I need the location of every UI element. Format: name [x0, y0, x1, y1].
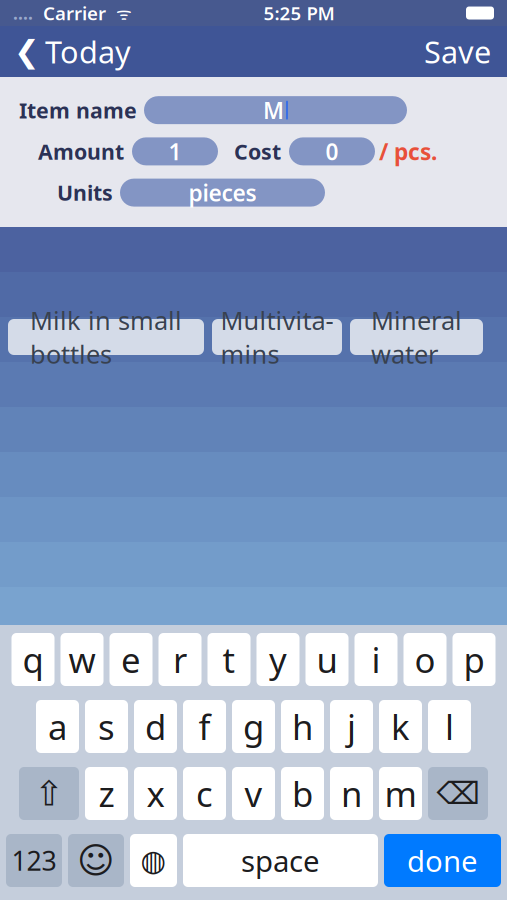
staticText: space — [241, 841, 320, 880]
button[interactable]: Milk in small bottles — [8, 319, 204, 355]
button[interactable]: Mineral water — [350, 319, 483, 355]
button[interactable]: b — [281, 767, 324, 820]
button[interactable]: z — [85, 767, 128, 820]
button[interactable]: y — [256, 633, 299, 686]
staticText: e — [121, 636, 141, 682]
button[interactable]: t — [207, 633, 250, 686]
button[interactable]: ❮ — [0, 22, 131, 81]
button[interactable]: done — [384, 834, 501, 887]
button[interactable]: k — [379, 700, 422, 753]
staticText: u — [316, 636, 337, 682]
staticText: ☺ — [77, 840, 115, 881]
staticText: a — [48, 703, 67, 749]
button[interactable]: x — [134, 767, 177, 820]
staticText: n — [341, 770, 362, 816]
staticText: Carrier — [33, 1, 106, 25]
staticText: d — [145, 703, 166, 749]
button[interactable]: s — [85, 700, 128, 753]
button[interactable]: n — [330, 767, 373, 820]
button[interactable]: w — [60, 633, 103, 686]
button[interactable]: r — [158, 633, 201, 686]
button[interactable]: a — [36, 700, 79, 753]
staticText: c — [196, 770, 213, 816]
button[interactable]: l — [428, 700, 471, 753]
staticText: h — [292, 703, 313, 749]
staticText: k — [391, 703, 410, 749]
staticText: x — [146, 770, 164, 816]
staticText: l — [445, 703, 454, 749]
staticText: g — [243, 703, 264, 749]
staticText: j — [347, 703, 356, 749]
staticText: p — [463, 636, 484, 682]
button[interactable]: pieces — [120, 179, 325, 207]
button[interactable]: c — [183, 767, 226, 820]
button[interactable]: 0 — [289, 137, 375, 165]
button[interactable]: i — [354, 633, 397, 686]
staticText: Today — [45, 31, 131, 72]
staticText: ⇧ — [34, 774, 63, 813]
staticText: v — [244, 770, 262, 816]
staticText: s — [98, 703, 115, 749]
staticText: w — [68, 636, 95, 682]
button[interactable]: m — [379, 767, 422, 820]
staticText: M — [263, 95, 284, 125]
button[interactable]: 1 — [132, 137, 218, 165]
staticText: ◍ — [140, 844, 166, 877]
button[interactable]: e — [109, 633, 152, 686]
button[interactable]: Dictation — [130, 834, 177, 887]
button[interactable]: h — [281, 700, 324, 753]
staticText: ❮ — [14, 34, 40, 69]
staticText: o — [414, 636, 435, 682]
staticText: pieces — [188, 177, 256, 208]
staticText: y — [269, 636, 287, 682]
staticText: t — [222, 636, 235, 682]
button[interactable]: g — [232, 700, 275, 753]
staticText: Multivitamins — [220, 303, 333, 371]
button[interactable]: Emoji — [68, 834, 124, 887]
staticText: Units — [57, 178, 113, 207]
button[interactable]: p — [452, 633, 495, 686]
staticText: i — [371, 636, 380, 682]
button[interactable]: v — [232, 767, 275, 820]
staticText: / pcs. — [379, 136, 437, 166]
staticText: 123 — [11, 843, 56, 878]
staticText: 5:25 PM — [263, 1, 334, 25]
staticText: Amount — [38, 137, 124, 165]
button[interactable]: M — [144, 96, 407, 124]
staticText: done — [407, 841, 478, 880]
button[interactable]: q — [11, 633, 54, 686]
button[interactable]: o — [403, 633, 446, 686]
staticText: ⌫ — [436, 776, 479, 811]
button[interactable]: Save — [424, 22, 507, 81]
staticText: q — [22, 636, 43, 682]
staticText: r — [173, 636, 187, 682]
button[interactable]: d — [134, 700, 177, 753]
staticText: Cost — [234, 137, 281, 165]
staticText: .... — [13, 1, 33, 24]
staticText: Mineral water — [371, 303, 462, 371]
staticText: Save — [424, 31, 491, 72]
staticText: 0 — [325, 136, 338, 166]
staticText: m — [384, 770, 416, 816]
button[interactable]: Delete — [428, 767, 488, 820]
staticText: b — [292, 770, 313, 816]
staticText: f — [198, 703, 210, 749]
button[interactable]: 123 — [6, 834, 62, 887]
button[interactable]: Shift — [19, 767, 79, 820]
staticText: Milk in small bottles — [30, 303, 182, 371]
button[interactable]: space — [183, 834, 378, 887]
staticText: Item name — [19, 96, 137, 124]
button[interactable]: Multivitamins — [212, 319, 342, 355]
button[interactable]: f — [183, 700, 226, 753]
button[interactable]: u — [305, 633, 348, 686]
staticText: 1 — [168, 136, 181, 166]
button[interactable]: j — [330, 700, 373, 753]
staticText: ᯤ — [106, 1, 132, 24]
staticText: z — [98, 770, 114, 816]
